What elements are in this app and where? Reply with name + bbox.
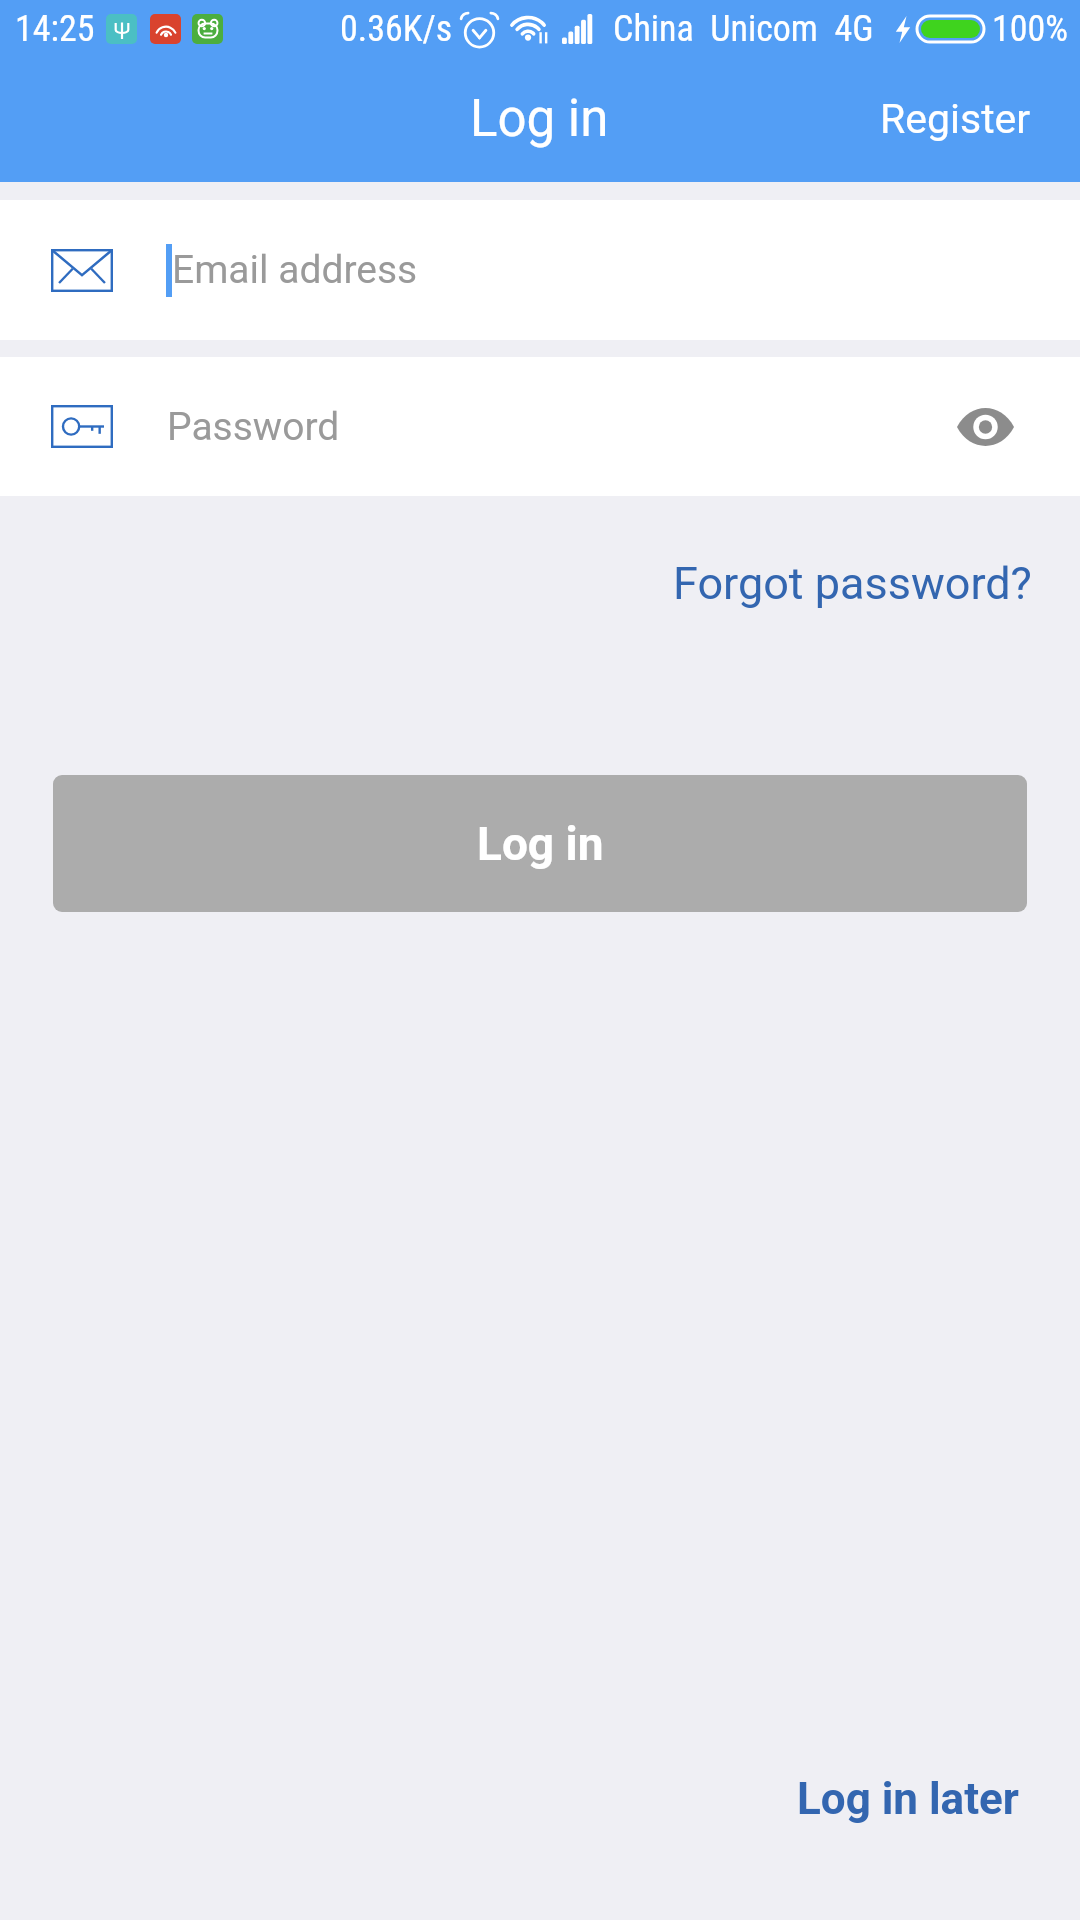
button[interactable]: Log in <box>53 775 1027 912</box>
staticText: Log in <box>470 89 609 149</box>
button[interactable]: Password <box>0 357 1080 496</box>
staticText: 0.36K/s <box>340 8 453 50</box>
staticText: Email address <box>172 247 418 293</box>
staticText: 100% <box>992 8 1069 50</box>
staticText: 14:25 <box>15 8 95 50</box>
button[interactable]: Show password <box>923 357 1047 496</box>
staticText: Register <box>880 95 1031 143</box>
staticText: Password <box>167 404 340 450</box>
button[interactable]: Email address <box>0 200 1080 340</box>
button[interactable]: Forgot password? <box>633 541 1080 626</box>
staticText: Log in later <box>797 1773 1019 1825</box>
staticText: Log in <box>477 817 604 871</box>
button[interactable]: Log in later <box>767 1755 1080 1920</box>
button[interactable]: Register <box>850 95 1080 153</box>
staticText: China Unicom 4G <box>613 8 874 50</box>
staticText: Forgot password? <box>673 557 1032 610</box>
